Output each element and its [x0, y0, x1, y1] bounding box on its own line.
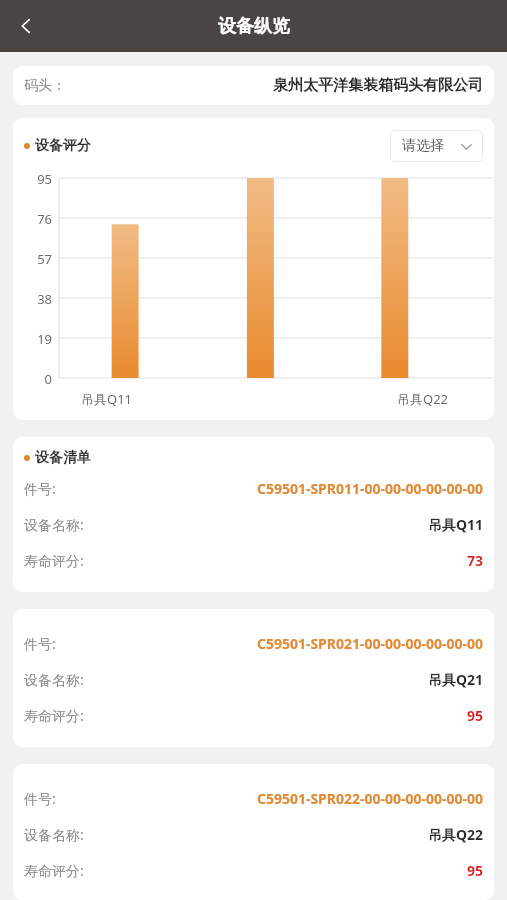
button[interactable]: 件号:	[24, 470, 483, 506]
staticText: 吊具Q21	[84, 670, 483, 689]
staticText: 请选择	[402, 137, 444, 155]
staticText: 73	[84, 551, 483, 570]
button[interactable]: 寿命评分:	[24, 697, 483, 733]
staticText: 吊具Q11	[84, 515, 483, 534]
staticText: 76	[37, 210, 52, 228]
staticText: 57	[37, 250, 52, 268]
button[interactable]: 码头：	[13, 66, 494, 105]
button[interactable]: 寿命评分:	[24, 542, 483, 578]
staticText: 19	[37, 330, 52, 348]
staticText: 设备清单	[35, 449, 91, 467]
staticText: C59501-SPR011-00-00-00-00-00-00	[56, 479, 483, 498]
staticText: 设备名称:	[24, 515, 84, 534]
staticText: 设备纵览	[218, 15, 290, 38]
staticText: 设备评分	[35, 137, 91, 155]
button[interactable]: 寿命评分:	[24, 852, 483, 888]
staticText: C59501-SPR022-00-00-00-00-00-00	[56, 789, 483, 808]
button[interactable]: 设备名称:	[24, 816, 483, 852]
staticText: 吊具Q22	[397, 390, 449, 408]
staticText: 95	[84, 706, 483, 725]
staticText: 38	[37, 290, 52, 308]
staticText: C59501-SPR021-00-00-00-00-00-00	[56, 634, 483, 653]
staticText: 设备名称:	[24, 825, 84, 844]
button[interactable]: 件号:	[24, 625, 483, 661]
button[interactable]: 设备名称:	[24, 661, 483, 697]
staticText: 件号:	[24, 479, 56, 498]
staticText: 寿命评分:	[24, 706, 84, 725]
staticText: 95	[37, 170, 52, 188]
button[interactable]: 请选择	[390, 130, 483, 162]
button[interactable]: 件号:	[24, 780, 483, 816]
staticText: 码头：	[24, 77, 66, 95]
staticText: 泉州太平洋集装箱码头有限公司	[66, 76, 483, 95]
staticText: 寿命评分:	[24, 551, 84, 570]
button[interactable]: 设备名称:	[24, 506, 483, 542]
staticText: 吊具Q11	[81, 390, 133, 408]
staticText: 件号:	[24, 789, 56, 808]
button[interactable]: Back	[4, 4, 48, 48]
staticText: 吊具Q22	[84, 825, 483, 844]
staticText: 0	[44, 370, 52, 386]
staticText: 95	[84, 861, 483, 880]
staticText: 设备名称:	[24, 670, 84, 689]
staticText: 件号:	[24, 634, 56, 653]
staticText: 寿命评分:	[24, 861, 84, 880]
